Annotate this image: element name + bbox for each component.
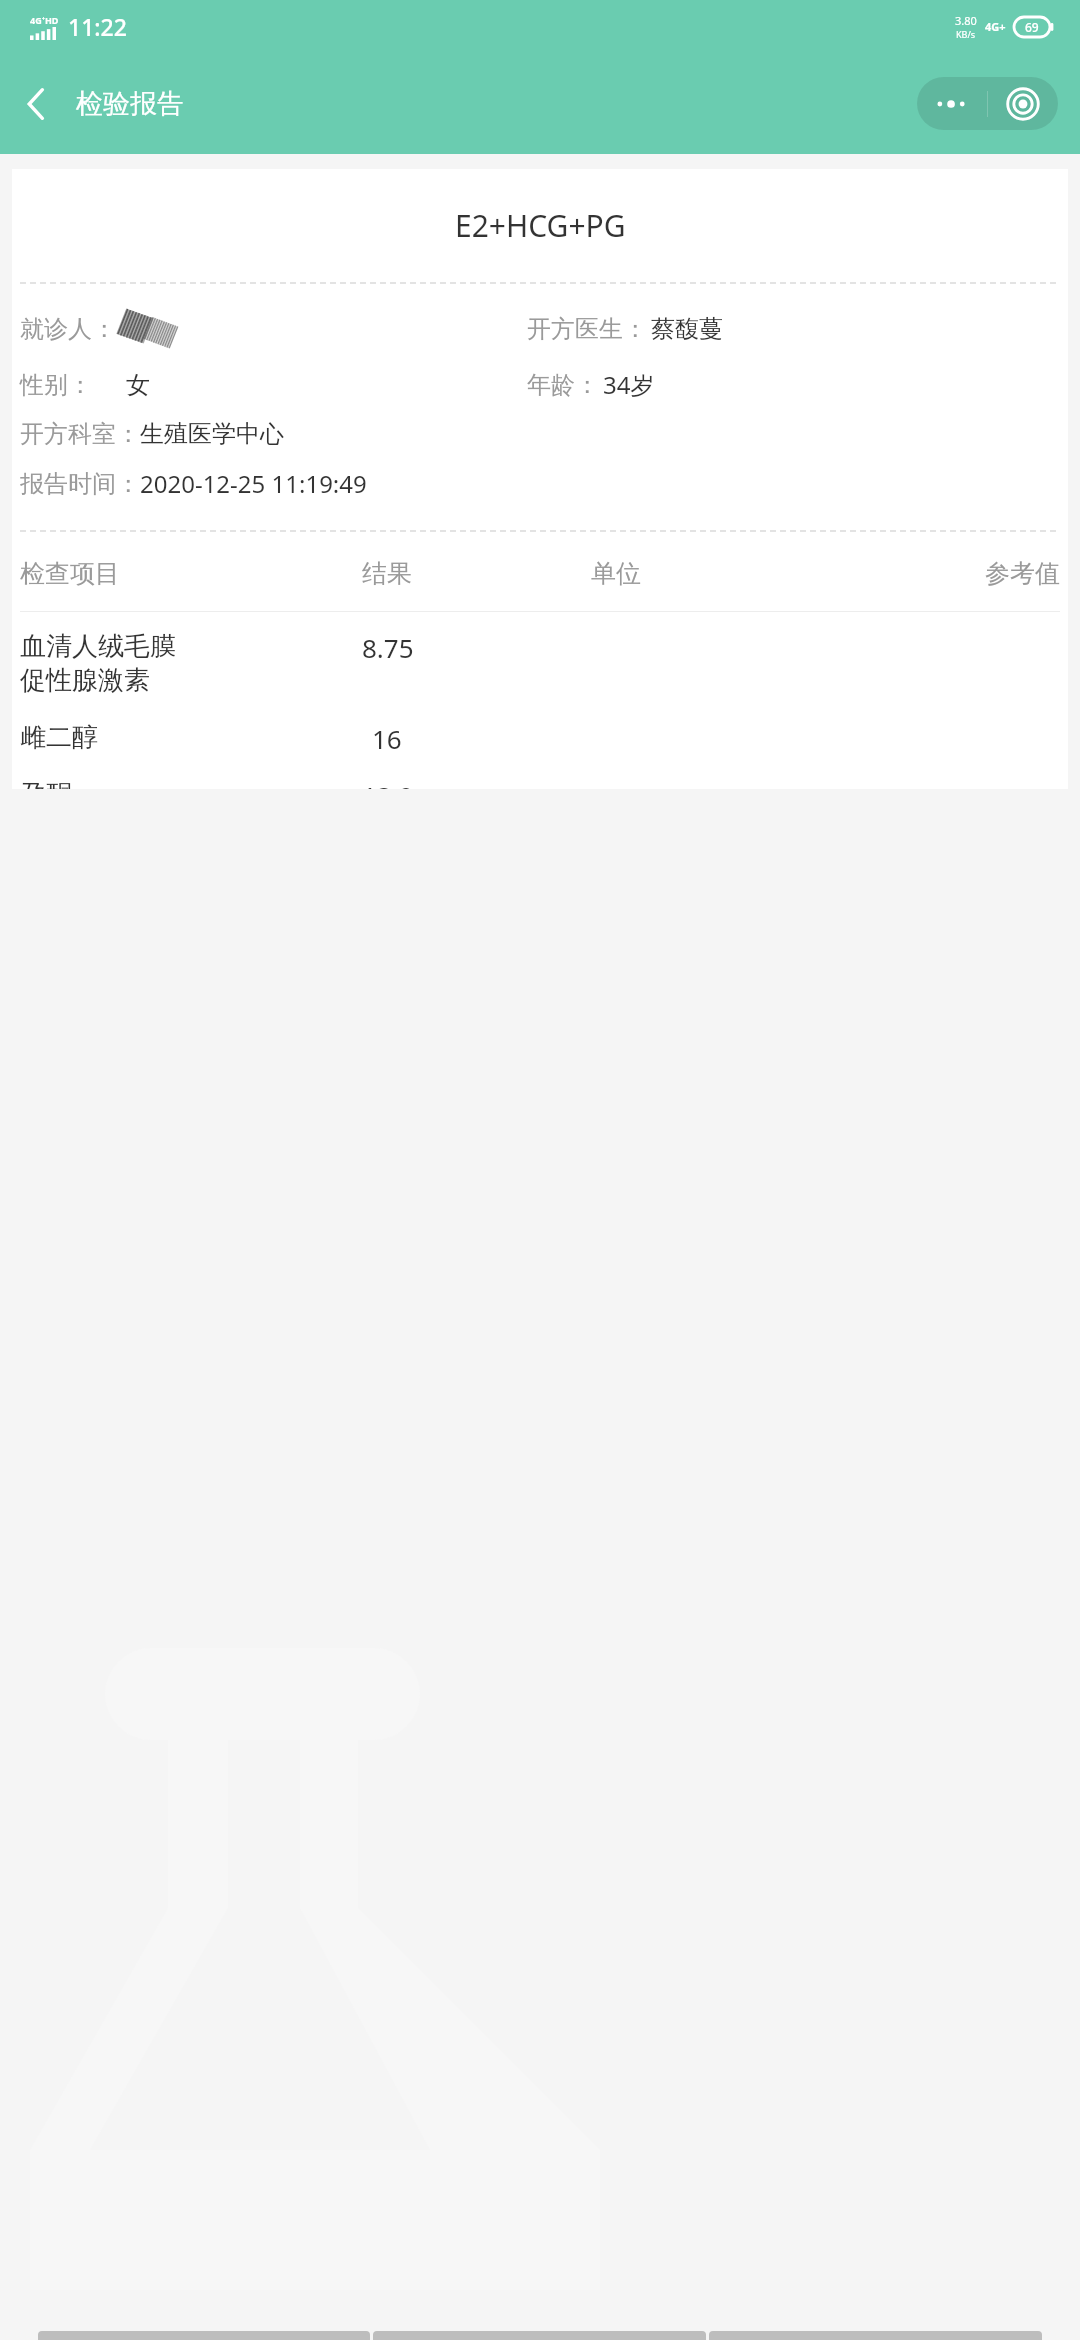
staticText: 11:22 [68, 11, 127, 42]
staticText: 参考值 [820, 558, 1060, 589]
staticText: 单位 [591, 558, 820, 589]
staticText: 蔡馥蔓 [651, 314, 723, 344]
staticText: 4G⁺HD [30, 14, 59, 26]
staticText: E2+HCG+PG [455, 205, 626, 246]
staticText: 年龄： [527, 370, 599, 400]
staticText: 开方医生： [527, 314, 647, 344]
staticText: 69 [1025, 19, 1039, 35]
staticText: 34岁 [603, 368, 655, 401]
staticText: 报告时间： [20, 469, 140, 499]
staticText: 16 [372, 721, 402, 756]
button[interactable]: 孕酮 [12, 778, 1068, 789]
staticText: 孕酮 [20, 778, 362, 789]
staticText: 2020-12-25 11:19:49 [140, 467, 367, 500]
staticText: 生殖医学中心 [140, 419, 284, 449]
staticText: 开方科室： [20, 419, 140, 449]
staticText: 检查项目 [20, 558, 362, 589]
staticText: 检验报告 [76, 87, 184, 121]
staticText: 13.9 [362, 778, 414, 789]
button[interactable]: 血清人绒毛膜 促性腺激素 [12, 630, 1068, 697]
button[interactable]: 胶囊菜单 [988, 87, 1058, 121]
button[interactable]: 返回 [14, 79, 58, 129]
button[interactable]: 雌二醇 [12, 721, 1068, 756]
staticText: 4G+ [985, 19, 1006, 34]
staticText: 就诊人： [20, 314, 116, 344]
staticText: 性别： [20, 370, 92, 400]
staticText: 血清人绒毛膜 促性腺激素 [20, 630, 362, 697]
staticText: 女 [126, 370, 150, 400]
button[interactable]: 更多 [917, 98, 987, 110]
staticText: 3.80 [955, 13, 977, 28]
staticText: 8.75 [362, 630, 414, 665]
staticText: 结果 [362, 558, 591, 589]
staticText: 雌二醇 [20, 721, 362, 754]
staticText: KB/s [956, 28, 976, 40]
